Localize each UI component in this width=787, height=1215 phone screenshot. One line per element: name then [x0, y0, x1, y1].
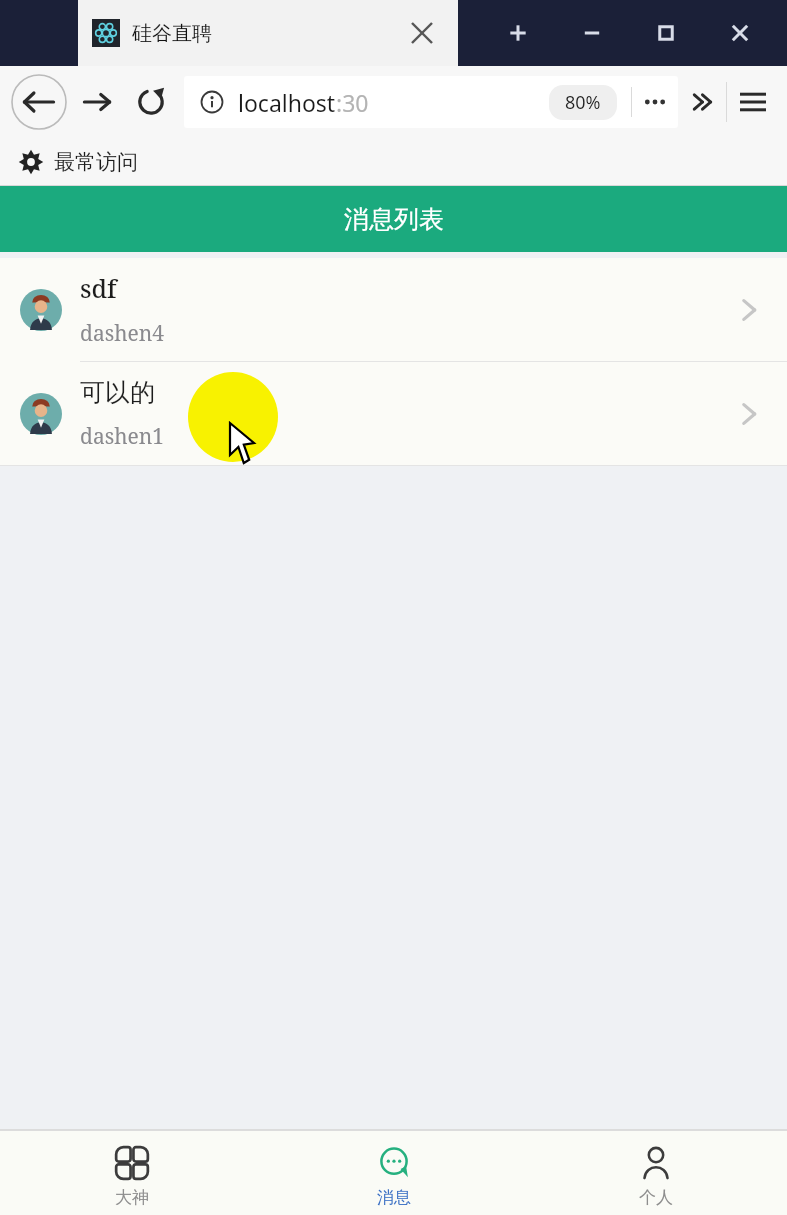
staticText: :30: [336, 87, 369, 118]
staticText: dashen4: [80, 319, 165, 348]
button[interactable]: 消息: [263, 1139, 525, 1208]
button[interactable]: More tools: [678, 78, 726, 126]
staticText: 消息列表: [344, 204, 444, 235]
button[interactable]: Reload: [128, 79, 174, 125]
button[interactable]: 最常访问: [18, 138, 787, 186]
button[interactable]: Page actions: [632, 79, 678, 125]
button[interactable]: New tab: [481, 0, 555, 66]
button[interactable]: 80%: [549, 85, 617, 120]
staticText: localhost: [238, 87, 336, 118]
staticText: dashen1: [80, 422, 165, 451]
button[interactable]: Close tab: [406, 17, 438, 49]
staticText: 最常访问: [54, 149, 138, 175]
staticText: 大神: [115, 1187, 149, 1208]
staticText: 消息: [377, 1187, 411, 1208]
button[interactable]: sdf: [0, 258, 787, 361]
staticText: 可以的: [80, 377, 155, 408]
button[interactable]: localhost: [184, 76, 678, 128]
button[interactable]: Minimize: [555, 0, 629, 66]
button[interactable]: 个人: [525, 1139, 787, 1208]
staticText: sdf: [80, 271, 117, 305]
button[interactable]: 大神: [0, 1139, 263, 1208]
staticText: 硅谷直聘: [132, 21, 212, 46]
button[interactable]: Maximize: [629, 0, 703, 66]
button[interactable]: 可以的: [0, 362, 787, 465]
button[interactable]: Close window: [703, 0, 777, 66]
staticText: 个人: [639, 1187, 673, 1208]
button[interactable]: 硅谷直聘: [78, 0, 458, 66]
button[interactable]: Forward: [74, 79, 120, 125]
staticText: 80%: [565, 90, 601, 115]
button[interactable]: Menu: [727, 76, 779, 128]
button[interactable]: Back: [10, 73, 68, 131]
